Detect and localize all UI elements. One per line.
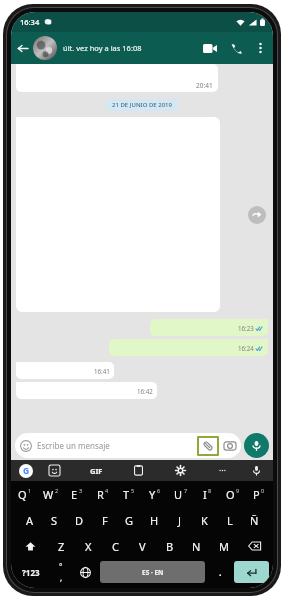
staticText: 6 [157,487,161,494]
staticText: Escribe un mensaje [37,440,110,451]
button[interactable]: K [192,507,217,533]
button[interactable]: V [129,533,156,559]
staticText: . [219,566,222,578]
button[interactable]: J [167,507,192,533]
button[interactable]: Escribe un mensaje [15,433,241,458]
staticText: S [51,513,58,528]
staticText: C [112,539,119,554]
button[interactable]: T [116,481,142,507]
button[interactable]: B [156,533,183,559]
staticText: F [102,513,108,528]
staticText: 20:41 [196,81,213,90]
staticText: 16:41 [94,367,110,375]
button[interactable]: N [183,533,210,559]
button[interactable]: GIF [75,466,117,476]
staticText: O [226,487,235,502]
staticText: Y [149,487,156,502]
button[interactable]: H [142,507,167,533]
button[interactable]: L [217,507,242,533]
button[interactable]: Back [11,37,33,59]
staticText: P [253,487,260,502]
staticText: T [123,487,130,502]
staticText: , [60,572,63,583]
button[interactable]: Voice message [244,433,269,458]
staticText: 3 [79,487,83,494]
staticText: 21 DE JUNIO DE 2019 [112,101,172,109]
staticText: 16:34 [20,17,40,27]
button[interactable]: F [92,507,117,533]
button[interactable]: 16:23 [150,319,268,336]
button[interactable]: Z [48,533,75,559]
button[interactable]: Attach [199,438,217,454]
staticText: N [192,539,201,554]
staticText: A [26,513,34,528]
button[interactable]: Backspace [237,533,272,559]
button[interactable]: Change language [73,561,97,583]
staticText: U [174,487,183,502]
staticText: 2 [55,487,59,494]
staticText: ES · EN [142,568,164,577]
staticText: R [97,487,104,502]
button[interactable]: Shift [12,533,48,559]
staticText: E [71,487,78,502]
button[interactable]: Voice call [223,35,249,61]
button[interactable]: Y [142,481,168,507]
button[interactable]: A [17,507,42,533]
button[interactable]: E [64,481,90,507]
staticText: 0 [261,487,265,494]
button[interactable]: R [90,481,116,507]
staticText: G [23,465,30,477]
button[interactable]: Contact photo [33,36,57,60]
button[interactable]: Q [12,481,38,507]
staticText: ° [59,561,63,572]
staticText: J [178,513,182,528]
staticText: 7 [184,487,188,494]
button[interactable]: 16:24 [109,339,268,356]
staticText: 9 [236,487,240,494]
button[interactable]: Voice input [243,460,269,481]
button[interactable]: S [42,507,67,533]
button[interactable]: W [38,481,64,507]
button[interactable]: . [208,561,232,583]
button[interactable]: M [210,533,237,559]
button[interactable]: Video call [197,35,223,61]
staticText: 16:42 [137,387,153,395]
button[interactable]: D [67,507,92,533]
button[interactable]: G [117,507,142,533]
button[interactable]: I [194,481,220,507]
button[interactable]: C [102,533,129,559]
button[interactable]: Ñ [242,507,267,533]
button[interactable]: P [246,481,272,507]
button[interactable]: 20:41 [16,64,218,92]
staticText: 16:23 [238,324,254,332]
button[interactable]: Settings [159,460,201,481]
button[interactable]: Camera [222,438,237,453]
button[interactable]: Enter [234,561,269,583]
button[interactable]: More options [249,37,271,59]
staticText: L [227,513,233,528]
staticText: K [201,513,208,528]
button[interactable]: O [220,481,246,507]
button[interactable]: 16:42 [16,382,157,399]
staticText: M [219,539,229,554]
staticText: I [203,487,207,502]
button[interactable]: Stickers [33,460,75,481]
button[interactable]: Forward [248,206,266,224]
staticText: Q [18,487,27,502]
button[interactable]: Clipboard [117,460,159,481]
button[interactable]: ° [49,561,73,583]
button[interactable]: Google search [19,464,33,478]
staticText: Z [58,539,65,554]
button[interactable]: More [201,460,243,481]
staticText: ?123 [22,567,40,578]
button[interactable]: ES · EN [100,561,205,583]
staticText: 5 [131,487,135,494]
staticText: 16:24 [238,344,254,352]
button[interactable]: X [75,533,102,559]
button[interactable]: 16:41 [16,362,114,379]
button[interactable]: U [168,481,194,507]
button[interactable]: ?123 [13,561,49,583]
staticText: B [166,539,174,554]
staticText: G [125,513,134,528]
